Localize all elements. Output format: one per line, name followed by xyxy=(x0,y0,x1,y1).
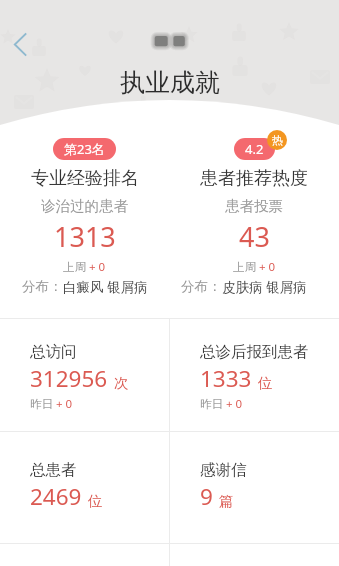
staticText: 位 xyxy=(88,492,103,510)
staticText: 总访问 xyxy=(30,342,77,362)
button[interactable]: 感谢信 xyxy=(170,432,339,543)
staticText: 位 xyxy=(258,374,273,392)
button[interactable]: 总诊后报到患者 xyxy=(170,319,339,431)
button[interactable]: 第23名 xyxy=(0,126,169,318)
staticText: 患者投票 xyxy=(225,197,283,215)
staticText: 上周 xyxy=(63,259,89,275)
staticText: 分布： xyxy=(181,278,222,295)
staticText: 篇 xyxy=(219,492,234,510)
staticText: 总患者 xyxy=(30,460,77,480)
staticText: 皮肤病 银屑病 xyxy=(222,278,307,296)
staticText: 次 xyxy=(114,374,129,392)
staticText: 热 xyxy=(272,133,283,147)
staticText: + 0 xyxy=(259,259,276,275)
staticText: 诊治过的患者 xyxy=(41,197,128,215)
staticText: 2469 xyxy=(30,481,82,512)
staticText: 312956 xyxy=(30,363,108,394)
staticText: 昨日 xyxy=(30,396,56,412)
staticText: 第23名 xyxy=(64,140,105,158)
button[interactable]: Back xyxy=(2,27,38,62)
staticText: 总诊后报到患者 xyxy=(200,342,309,362)
staticText: 4.2 xyxy=(245,140,264,158)
staticText: 1313 xyxy=(54,218,116,255)
staticText: 昨日 xyxy=(200,396,226,412)
staticText: 9 xyxy=(200,481,213,512)
button[interactable]: 4.2 xyxy=(169,126,339,318)
staticText: 白癜风 银屑病 xyxy=(63,278,148,296)
staticText: 患者推荐热度 xyxy=(200,167,308,190)
staticText: 43 xyxy=(239,218,270,255)
staticText: 上周 xyxy=(233,259,259,275)
staticText: + 0 xyxy=(226,396,243,412)
staticText: + 0 xyxy=(56,396,73,412)
staticText: 1333 xyxy=(200,363,252,394)
staticText: + 0 xyxy=(89,259,106,275)
button[interactable]: 总患者 xyxy=(0,432,169,543)
staticText: 分布： xyxy=(22,278,63,295)
staticText: 执业成就 xyxy=(120,67,220,98)
button[interactable]: 总访问 xyxy=(0,319,169,431)
staticText: 专业经验排名 xyxy=(31,167,139,190)
staticText: 感谢信 xyxy=(200,460,247,480)
